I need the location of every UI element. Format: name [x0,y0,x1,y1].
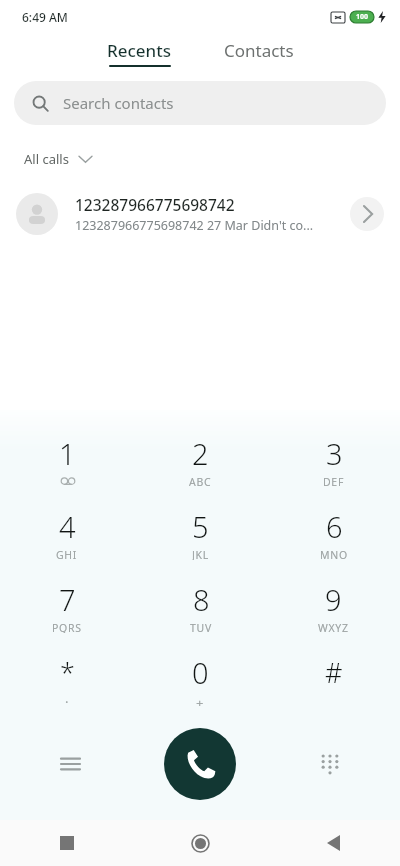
button[interactable]: Contacts [210,35,308,71]
staticText: WXYZ [318,621,349,633]
button[interactable]: Call details [350,197,384,231]
staticText: 5 [192,507,209,546]
staticText: 9 [325,580,342,619]
button[interactable]: Search contacts [14,81,386,125]
staticText: · [65,693,70,705]
button[interactable]: 3 [267,424,400,497]
button[interactable]: 1 [0,424,134,497]
staticText: GHI [56,548,78,560]
staticText: 123287966775698742 27 Mar Didn't co... [75,217,314,234]
staticText: 0 [192,653,209,692]
button[interactable]: 7 [0,570,134,643]
staticText: 3 [326,434,343,473]
button[interactable]: 9 [267,570,400,643]
button[interactable]: 5 [134,497,267,570]
staticText: 123287966775698742 [75,194,235,215]
button[interactable]: 2 [134,424,267,497]
staticText: PQRS [52,621,82,633]
button[interactable]: # [267,643,400,716]
staticText: 1 [59,434,76,473]
staticText: + [196,694,205,706]
staticText: DEF [323,475,345,487]
button[interactable]: 6 [267,497,400,570]
staticText: JKL [192,548,209,560]
button[interactable]: Keypad [308,742,352,786]
button[interactable]: All calls [18,147,98,171]
button[interactable]: Recent apps [0,820,134,866]
button[interactable]: 0 [134,643,267,716]
staticText: 100 [356,12,369,22]
button[interactable]: * [0,643,134,716]
staticText: Contacts [224,39,294,62]
button[interactable]: Home [134,820,267,866]
staticText: 8 [193,580,210,619]
staticText: 6 [326,507,343,546]
button[interactable]: More options [48,742,92,786]
button[interactable]: Recents [93,35,186,71]
staticText: Search contacts [63,93,174,113]
staticText: TUV [190,621,212,633]
button[interactable]: Call [164,728,236,800]
button[interactable]: 8 [134,570,267,643]
staticText: ABC [189,475,212,487]
button[interactable]: Back [267,820,400,866]
staticText: MNO [320,548,348,560]
staticText: 4 [59,507,76,546]
staticText: Recents [107,39,172,62]
staticText: All calls [24,150,69,168]
button[interactable]: 123287966775698742 [0,189,400,239]
staticText: 2 [192,434,209,473]
staticText: 7 [59,580,76,619]
staticText: * [60,654,75,691]
staticText: 6:49 AM [22,9,68,25]
button[interactable]: 4 [0,497,134,570]
staticText: # [325,654,343,691]
